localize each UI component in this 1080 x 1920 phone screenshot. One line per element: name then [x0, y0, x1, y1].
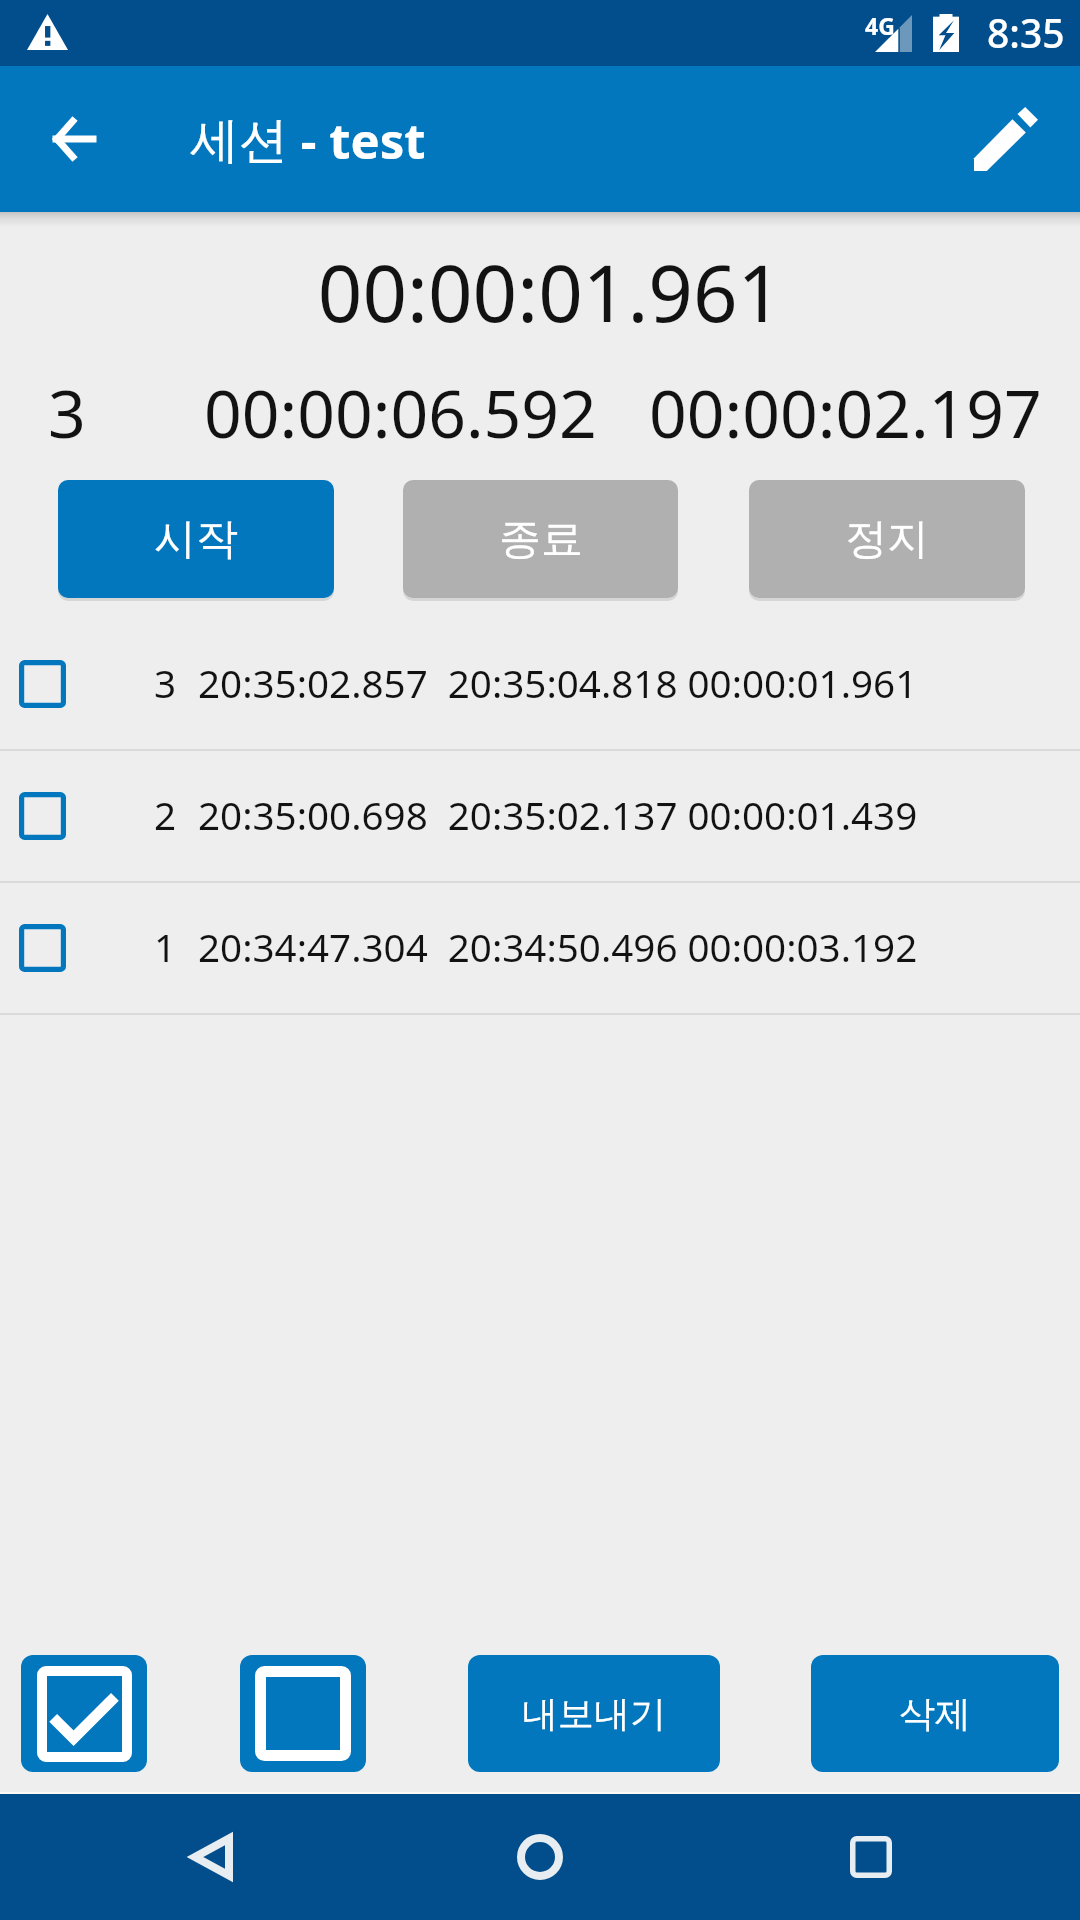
button[interactable]: 내보내기: [468, 1655, 720, 1772]
staticText: 2: [154, 789, 177, 842]
staticText: 00:00:06.592: [204, 367, 597, 457]
staticText: 00:00:01.961: [10, 239, 1080, 345]
staticText: 1: [154, 921, 177, 974]
button[interactable]: Select lap: [19, 660, 66, 708]
button[interactable]: 정지: [749, 480, 1025, 598]
staticText: - test: [288, 107, 426, 174]
button[interactable]: Select lap: [19, 792, 66, 840]
button[interactable]: Home: [490, 1807, 590, 1907]
staticText: 00:00:02.197: [649, 367, 1042, 457]
button[interactable]: Select all: [21, 1655, 147, 1772]
button[interactable]: Select lap: [0, 619, 1080, 749]
staticText: 4G: [865, 10, 895, 41]
staticText: 8:35: [987, 6, 1065, 59]
button[interactable]: 시작: [58, 480, 334, 598]
staticText: 내보내기: [522, 1691, 666, 1736]
button[interactable]: Recents: [821, 1807, 921, 1907]
button[interactable]: Edit: [958, 91, 1054, 187]
staticText: 세션: [190, 110, 288, 172]
button[interactable]: Select lap: [0, 751, 1080, 881]
staticText: 종료: [499, 513, 583, 566]
button[interactable]: Deselect all: [240, 1655, 366, 1772]
button[interactable]: Select lap: [19, 924, 66, 972]
staticText: 20:35:02.857 20:35:04.818 00:00:01.961: [198, 657, 918, 710]
staticText: 삭제: [899, 1691, 971, 1736]
button[interactable]: Select lap: [0, 883, 1080, 1013]
button[interactable]: Back: [30, 95, 118, 183]
staticText: 3: [48, 367, 86, 457]
staticText: 정지: [845, 513, 929, 566]
staticText: 3: [154, 657, 177, 710]
button[interactable]: 종료: [403, 480, 678, 598]
staticText: 20:35:00.698 20:35:02.137 00:00:01.439: [198, 789, 918, 842]
staticText: 20:34:47.304 20:34:50.496 00:00:03.192: [198, 921, 918, 974]
staticText: 시작: [154, 513, 238, 566]
button[interactable]: 삭제: [811, 1655, 1059, 1772]
button[interactable]: Back: [159, 1807, 259, 1907]
